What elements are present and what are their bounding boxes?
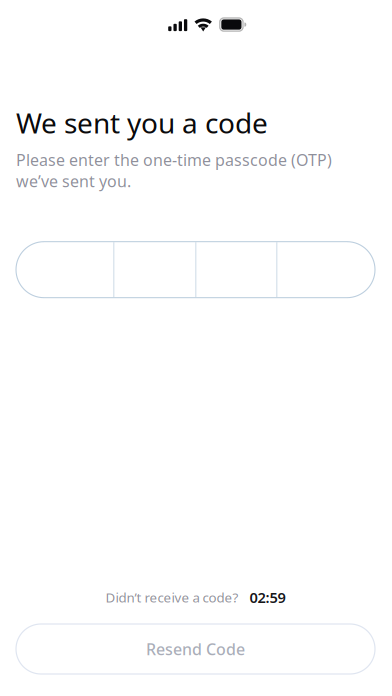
button[interactable]: Passcode digit 2: [114, 242, 195, 298]
button[interactable]: Passcode digit 4: [277, 242, 375, 298]
button[interactable]: Passcode digit 3: [196, 242, 276, 298]
staticText: Resend Code: [146, 638, 245, 660]
staticText: Didn’t receive a code?: [105, 588, 238, 606]
button[interactable]: Resend Code: [16, 624, 375, 674]
staticText: 02:59: [249, 587, 285, 607]
button[interactable]: Passcode digit 1: [15, 242, 113, 298]
staticText: Please enter the one-time passcode (OTP)…: [16, 149, 332, 192]
staticText: We sent you a code: [16, 104, 268, 141]
